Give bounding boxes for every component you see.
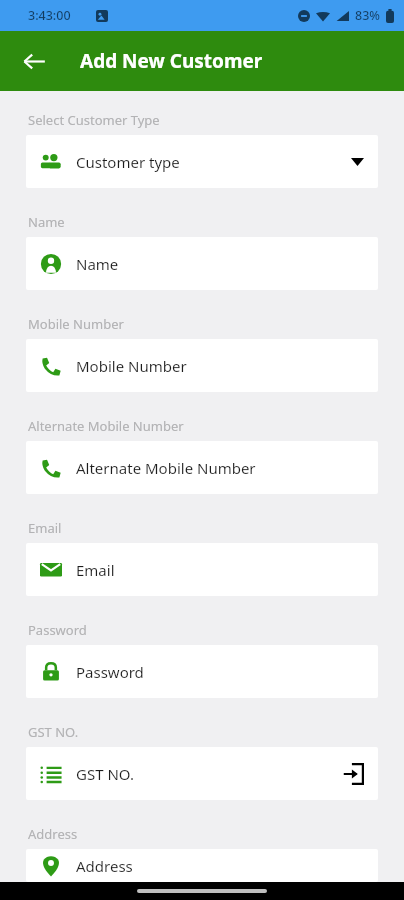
staticText: Address bbox=[28, 825, 78, 843]
staticText: Alternate Mobile Number bbox=[28, 417, 184, 435]
staticText: GST NO. bbox=[28, 723, 79, 741]
button[interactable]: Email bbox=[26, 543, 378, 596]
button[interactable]: Password bbox=[26, 645, 378, 698]
staticText: 83% bbox=[355, 7, 380, 24]
button[interactable]: Name bbox=[26, 237, 378, 290]
staticText: Add New Customer bbox=[80, 48, 263, 74]
button[interactable]: Mobile Number bbox=[26, 339, 378, 392]
staticText: Customer type bbox=[76, 152, 180, 172]
staticText: Address bbox=[76, 856, 133, 876]
staticText: 3:43:00 bbox=[28, 7, 71, 24]
staticText: Password bbox=[76, 662, 144, 682]
staticText: Alternate Mobile Number bbox=[76, 458, 256, 478]
button[interactable]: Customer type bbox=[26, 135, 378, 188]
staticText: Select Customer Type bbox=[28, 111, 160, 129]
staticText: Name bbox=[28, 213, 65, 231]
button[interactable]: Alternate Mobile Number bbox=[26, 441, 378, 494]
staticText: Email bbox=[76, 560, 115, 580]
staticText: Mobile Number bbox=[76, 356, 187, 376]
staticText: Password bbox=[28, 621, 87, 639]
button[interactable]: Back bbox=[12, 39, 56, 83]
button[interactable]: GST NO. bbox=[26, 747, 378, 800]
staticText: Email bbox=[28, 519, 62, 537]
button[interactable]: Address bbox=[26, 849, 378, 882]
staticText: GST NO. bbox=[76, 764, 134, 784]
staticText: Name bbox=[76, 254, 119, 274]
staticText: Mobile Number bbox=[28, 315, 124, 333]
